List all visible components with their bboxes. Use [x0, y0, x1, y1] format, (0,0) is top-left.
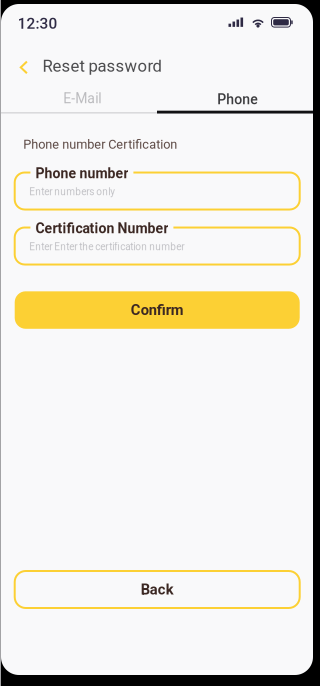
staticText: Reset password	[42, 56, 161, 76]
button[interactable]: Phone	[157, 83, 313, 113]
button[interactable]: Back	[15, 52, 43, 82]
button[interactable]: Back	[15, 571, 300, 608]
staticText: Enter numbers only	[29, 186, 115, 198]
staticText: E-Mail	[63, 90, 101, 107]
staticText: Phone	[217, 91, 257, 108]
staticText: Phone number Certification	[23, 137, 177, 152]
staticText: 12:30	[17, 14, 57, 32]
staticText: Phone number	[35, 165, 128, 182]
staticText: Confirm	[131, 301, 184, 319]
staticText: Back	[141, 581, 174, 598]
button[interactable]: Confirm	[15, 291, 300, 329]
staticText: Enter Enter the certification number	[29, 241, 184, 253]
button[interactable]: E-Mail	[1, 83, 157, 113]
staticText: Certification Number	[35, 220, 168, 237]
